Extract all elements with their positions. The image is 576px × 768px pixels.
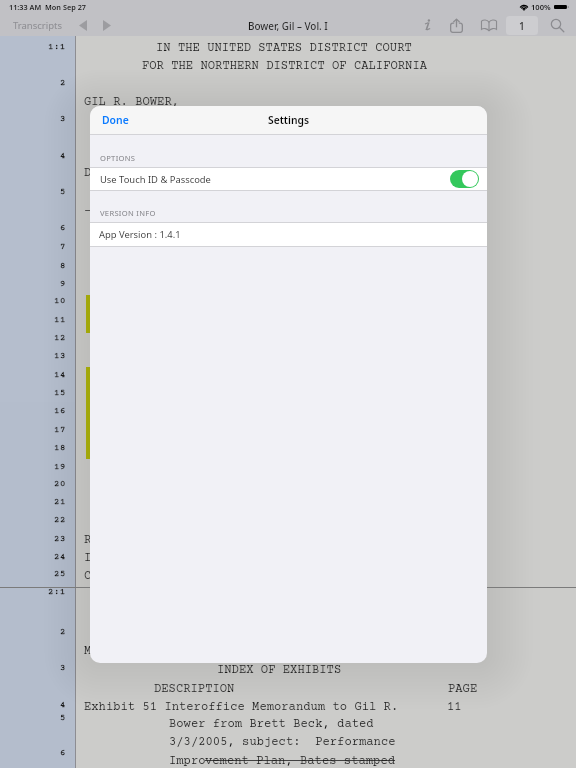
staticText: Done <box>102 113 129 127</box>
button[interactable]: Info <box>413 14 441 36</box>
staticText: 4 <box>60 151 66 161</box>
staticText: 2 <box>60 78 66 88</box>
staticText: Bower, Gil – Vol. I <box>248 19 328 32</box>
staticText: 1:1 <box>48 42 66 52</box>
staticText: 4 <box>60 700 66 710</box>
staticText: 18 <box>54 443 66 453</box>
staticText: 15 <box>54 388 66 398</box>
staticText: 3 <box>60 663 66 673</box>
staticText: 21 <box>54 497 66 507</box>
staticText: 10 <box>54 296 66 306</box>
staticText: 7 <box>60 242 66 252</box>
button[interactable]: Next transcript <box>94 14 120 36</box>
staticText: GIL R. BOWER, <box>84 95 180 109</box>
staticText: M <box>84 644 92 658</box>
staticText: I <box>84 551 92 565</box>
staticText: PAGE <box>448 682 478 696</box>
staticText: 19 <box>54 462 66 472</box>
button[interactable]: Search <box>538 14 576 36</box>
staticText: FOR THE NORTHERN DISTRICT OF CALIFORNIA <box>142 59 428 73</box>
staticText: 11 <box>447 700 462 714</box>
button[interactable]: 1 <box>506 16 538 35</box>
staticText: 5 <box>60 713 66 723</box>
button[interactable]: App Version : 1.4.1 <box>90 223 487 246</box>
staticText: - <box>84 204 92 218</box>
staticText: 1 <box>519 19 525 33</box>
staticText: 5 <box>60 187 66 197</box>
button[interactable]: Use Touch ID & Passcode <box>90 168 487 190</box>
staticText: vement Plan, Bates stamped <box>205 754 396 768</box>
staticText: 3/3/2005, subject: Performance <box>169 735 396 749</box>
button[interactable]: Bookmarks <box>472 14 506 36</box>
staticText: 11:33 AM Mon Sep 27 <box>9 2 87 12</box>
staticText: R <box>84 533 92 547</box>
staticText: Transcripts <box>13 19 63 32</box>
staticText: VERSION INFO <box>100 208 156 218</box>
staticText: INDEX OF EXHIBITS <box>217 663 342 677</box>
staticText: 16 <box>54 406 66 416</box>
staticText: App Version : 1.4.1 <box>99 228 181 241</box>
staticText: 23 <box>54 534 66 544</box>
staticText: 8 <box>60 261 66 271</box>
staticText: 24 <box>54 552 66 562</box>
staticText: Settings <box>268 113 310 127</box>
button[interactable]: Use Touch ID and Passcode toggle, on <box>450 170 479 188</box>
staticText: 14 <box>54 370 66 380</box>
button[interactable]: Done <box>90 107 142 133</box>
staticText: 100% <box>531 2 551 12</box>
staticText: 22 <box>54 515 66 525</box>
staticText: DESCRIPTION <box>154 682 235 696</box>
staticText: 11 <box>54 315 66 325</box>
staticText: 2 <box>60 627 66 637</box>
staticText: OPTIONS <box>100 153 136 163</box>
staticText: Impro <box>169 754 206 768</box>
staticText: 13 <box>54 351 66 361</box>
staticText: 3 <box>60 114 66 124</box>
staticText: IN THE UNITED STATES DISTRICT COURT <box>156 41 412 55</box>
staticText: 17 <box>54 425 66 435</box>
staticText: 6 <box>60 223 66 233</box>
button[interactable]: Transcripts <box>0 15 72 36</box>
staticText: 20 <box>54 479 66 489</box>
staticText: 6 <box>60 748 66 758</box>
staticText: D <box>84 166 92 180</box>
staticText: Use Touch ID & Passcode <box>100 173 211 186</box>
button[interactable]: Share <box>441 14 472 36</box>
staticText: 25 <box>54 569 66 579</box>
staticText: 9 <box>60 279 66 289</box>
button[interactable]: Previous transcript <box>72 14 94 36</box>
staticText: 2:1 <box>48 587 66 597</box>
staticText: C <box>84 569 92 583</box>
staticText: Bower from Brett Beck, dated <box>169 717 374 731</box>
staticText: 12 <box>54 333 66 343</box>
staticText: Exhibit 51 Interoffice Memorandum to Gil… <box>84 700 399 714</box>
